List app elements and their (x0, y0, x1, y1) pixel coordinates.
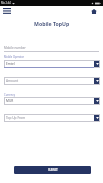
staticText: Top Up From (6, 116, 26, 120)
button[interactable]: SUBMIT (14, 166, 91, 174)
button[interactable]: Top Up From (4, 114, 100, 122)
staticText: Ma 2:44 (1, 1, 11, 5)
staticText: Mobile TopUp (34, 20, 70, 27)
staticText: MUR (6, 99, 14, 103)
button[interactable]: Menu (0, 6, 14, 17)
staticText: Amount (6, 79, 19, 83)
button[interactable]: Emtel (4, 60, 100, 68)
button[interactable]: MUR (4, 97, 100, 105)
staticText: Mobile Operator (4, 55, 25, 59)
staticText: Emtel (6, 62, 15, 66)
button[interactable]: Home (87, 5, 100, 17)
staticText: Mobile number (4, 46, 26, 50)
staticText: SUBMIT (48, 168, 58, 172)
button[interactable]: Amount (4, 77, 100, 85)
staticText: Currency (4, 93, 15, 97)
